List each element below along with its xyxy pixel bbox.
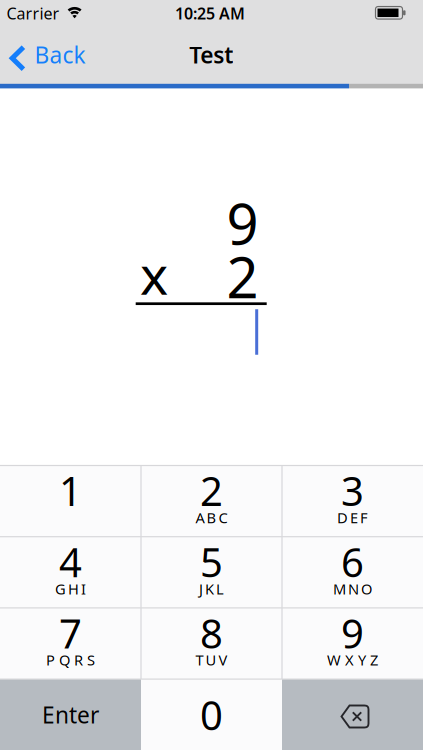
staticText: G H I (55, 579, 86, 598)
staticText: Carrier (6, 3, 59, 24)
staticText: 2 (226, 239, 258, 314)
staticText: 5 (200, 535, 223, 588)
staticText: 0 (200, 688, 223, 741)
button[interactable]: 2 (141, 465, 282, 537)
staticText: Back (34, 40, 85, 70)
staticText: x (140, 239, 168, 309)
button[interactable]: 7 (0, 608, 141, 679)
button[interactable]: Enter (0, 679, 141, 750)
staticText: 3 (341, 464, 364, 517)
staticText: 9 (226, 186, 258, 260)
staticText: Enter (42, 700, 99, 730)
staticText: 7 (59, 606, 82, 659)
staticText: 2 (200, 464, 223, 517)
staticText: 6 (341, 535, 364, 588)
staticText: 9 (341, 606, 364, 659)
staticText: 4 (59, 535, 82, 588)
staticText: A B C (195, 508, 227, 527)
button[interactable]: 6 (282, 537, 423, 608)
staticText: 8 (200, 606, 223, 659)
staticText: D E F (337, 508, 368, 527)
staticText: 1 (59, 464, 82, 517)
staticText: Test (189, 40, 233, 70)
staticText: P Q R S (46, 650, 95, 670)
button[interactable]: 3 (282, 465, 423, 537)
button[interactable]: 1 (0, 465, 141, 537)
staticText: W X Y Z (327, 650, 378, 670)
staticText: J K L (199, 579, 224, 598)
staticText: 10:25 AM (175, 3, 245, 24)
button[interactable]: 5 (141, 537, 282, 608)
button[interactable]: 9 (282, 608, 423, 679)
button[interactable]: 0 (141, 679, 282, 750)
button[interactable]: 4 (0, 537, 141, 608)
staticText: T U V (195, 650, 227, 670)
button[interactable]: 8 (141, 608, 282, 679)
staticText: M N O (333, 579, 372, 598)
button[interactable] (282, 679, 423, 750)
button[interactable]: Back (0, 26, 100, 84)
